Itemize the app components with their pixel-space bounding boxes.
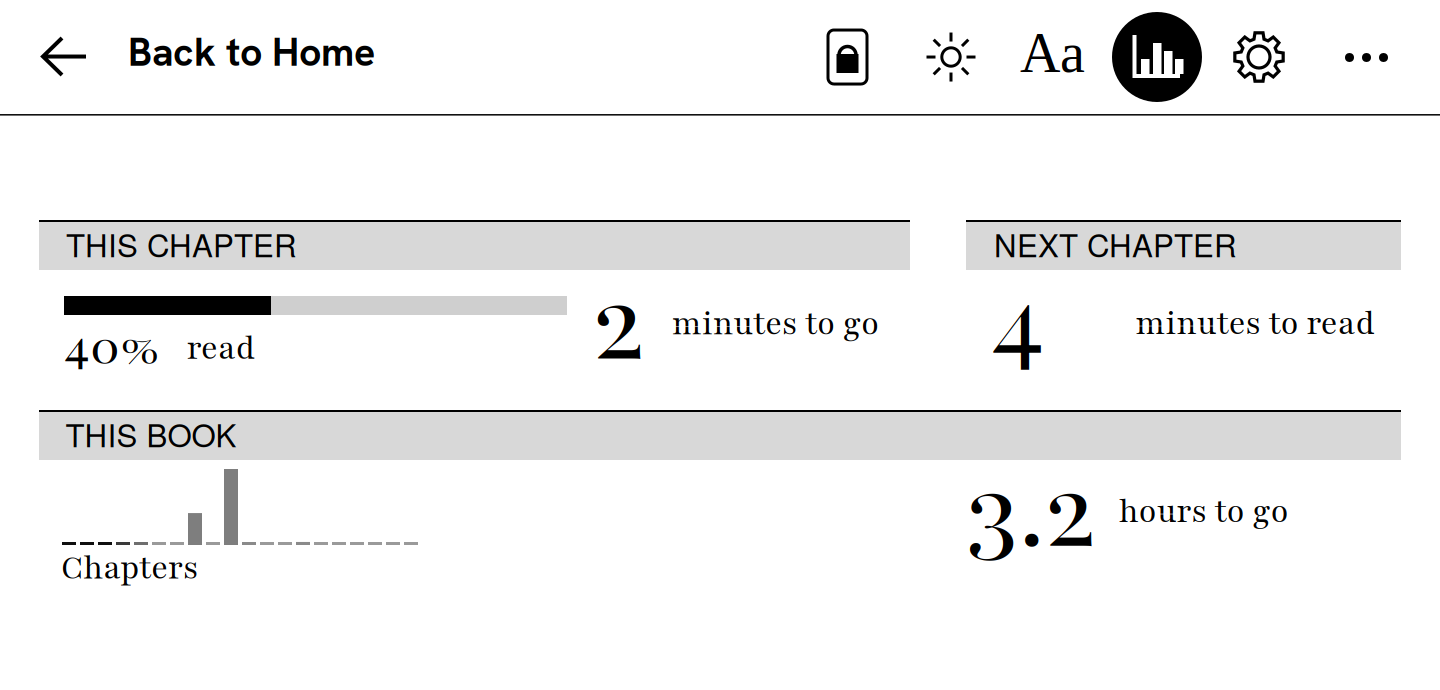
- button[interactable]: Back: [28, 37, 100, 77]
- staticText: hours to go: [1118, 490, 1288, 533]
- staticText: THIS BOOK: [65, 411, 236, 456]
- staticText: minutes to go: [672, 302, 879, 346]
- staticText: Back to Home: [128, 26, 375, 78]
- staticText: 2: [593, 249, 645, 397]
- button[interactable]: Text options: [1020, 25, 1086, 81]
- staticText: read: [187, 327, 255, 370]
- button[interactable]: Settings: [1233, 31, 1285, 83]
- staticText: 40%: [64, 313, 160, 381]
- staticText: NEXT CHAPTER: [994, 221, 1237, 266]
- staticText: minutes to read: [1135, 302, 1374, 345]
- staticText: 4: [992, 249, 1044, 393]
- staticText: 3.2: [966, 438, 1095, 584]
- button[interactable]: Brightness: [926, 32, 976, 82]
- button[interactable]: More options: [1345, 53, 1388, 62]
- button[interactable]: Reading stats: [1112, 12, 1202, 102]
- staticText: THIS CHAPTER: [66, 221, 297, 266]
- button[interactable]: Lock rotation: [828, 30, 867, 84]
- staticText: Aa: [1020, 22, 1085, 84]
- button[interactable]: Back to Home: [128, 20, 376, 84]
- staticText: Chapters: [61, 546, 198, 590]
